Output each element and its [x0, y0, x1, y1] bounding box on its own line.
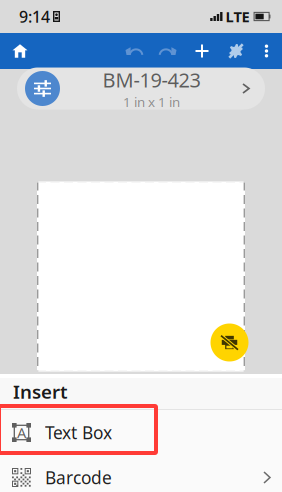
button[interactable]: Undo: [117, 33, 151, 69]
button[interactable]: Add: [185, 33, 219, 69]
button[interactable]: A: [0, 410, 282, 455]
staticText: 9:14: [19, 6, 50, 27]
staticText: LTE: [225, 7, 249, 26]
button[interactable]: BM-19-423: [17, 67, 265, 109]
staticText: Barcode: [45, 466, 112, 489]
staticText: Insert: [13, 379, 68, 404]
button[interactable]: Redo: [151, 33, 185, 69]
staticText: 1 in x 1 in: [123, 93, 180, 111]
button[interactable]: More options: [253, 33, 280, 69]
button[interactable]: Auto layout off: [219, 33, 253, 69]
button[interactable]: Barcode: [0, 455, 282, 492]
staticText: A: [17, 423, 26, 442]
button[interactable]: Printer not connected: [210, 323, 248, 361]
button[interactable]: Home: [1, 33, 39, 69]
staticText: BM-19-423: [102, 66, 200, 93]
staticText: Text Box: [45, 421, 112, 444]
